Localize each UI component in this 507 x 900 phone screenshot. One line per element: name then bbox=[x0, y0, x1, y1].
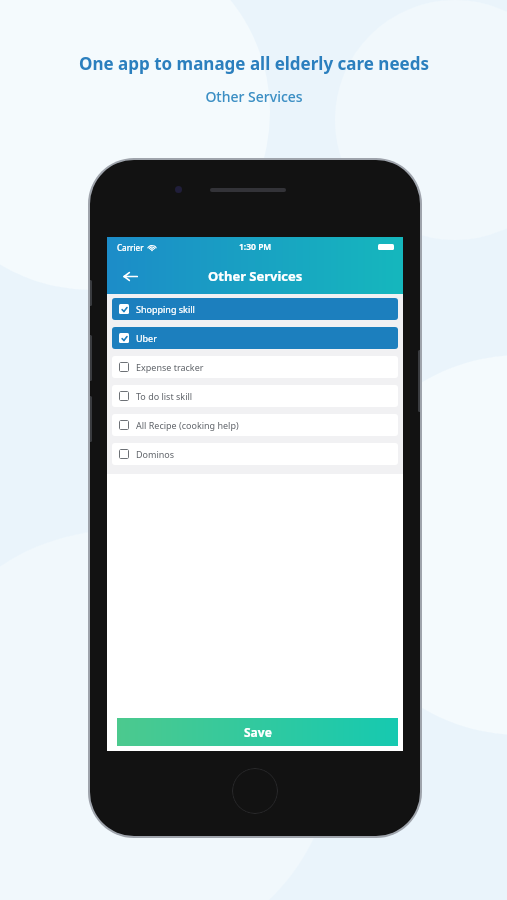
staticText: All Recipe (cooking help) bbox=[136, 419, 239, 431]
button[interactable]: All Recipe (cooking help) bbox=[112, 414, 398, 436]
staticText: To do list skill bbox=[136, 390, 193, 402]
staticText: Other Services bbox=[205, 87, 303, 106]
staticText: Carrier bbox=[117, 242, 144, 253]
staticText: Shopping skill bbox=[136, 303, 195, 315]
button[interactable]: Home bbox=[232, 768, 278, 814]
staticText: Other Services bbox=[208, 267, 303, 285]
button[interactable]: Shopping skill bbox=[112, 298, 398, 320]
button[interactable]: Dominos bbox=[112, 443, 398, 465]
button[interactable]: Save bbox=[117, 718, 398, 746]
staticText: One app to manage all elderly care needs bbox=[79, 52, 429, 75]
button[interactable]: To do list skill bbox=[112, 385, 398, 407]
button[interactable]: Expense tracker bbox=[112, 356, 398, 378]
button[interactable]: Back bbox=[115, 261, 145, 291]
button[interactable]: Uber bbox=[112, 327, 398, 349]
staticText: Uber bbox=[136, 332, 157, 344]
staticText: 1:30 PM bbox=[239, 241, 272, 253]
staticText: Dominos bbox=[136, 448, 175, 460]
staticText: Expense tracker bbox=[136, 361, 204, 373]
staticText: Save bbox=[244, 724, 272, 740]
